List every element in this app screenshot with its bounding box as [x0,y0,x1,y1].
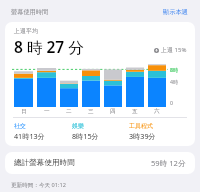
staticText: 0 [170,99,173,106]
button[interactable]: 工具程式 [129,122,186,141]
staticText: 8 時 27 分 [14,36,84,57]
button[interactable]: 社交 [14,122,72,141]
staticText: 59時 12分 [151,158,186,168]
button[interactable]: 總計螢幕使用時間 [5,152,195,174]
staticText: 五 [132,108,138,115]
staticText: 螢幕使用時間 [11,8,49,16]
staticText: 更新時間：今天 01:12 [11,181,66,189]
staticText: 總計螢幕使用時間 [14,158,75,168]
staticText: 41時13分 [14,131,45,141]
staticText: 8時 [170,66,179,73]
staticText: 工具程式 [129,122,153,130]
staticText: 二 [66,108,72,115]
staticText: 8時15分 [72,131,99,141]
button[interactable] [104,60,122,107]
button[interactable] [148,60,166,107]
staticText: 3時39分 [129,131,156,141]
button[interactable] [126,60,144,107]
button[interactable] [14,60,33,107]
button[interactable] [37,60,56,107]
staticText: 娛樂 [72,122,84,130]
staticText: 一 [44,108,50,115]
staticText: 上週平均 [14,27,38,35]
staticText: 4時 [170,78,179,85]
staticText: 上週 15% [161,46,187,54]
button[interactable]: 顯示本週 [161,7,190,17]
staticText: 三 [88,108,94,115]
staticText: 社交 [14,122,26,130]
button[interactable]: 娛樂 [72,122,129,141]
staticText: 六 [154,108,160,115]
button[interactable]: 上週平均 [5,22,195,146]
staticText: 四 [110,108,116,115]
other: 上升 [154,48,159,53]
staticText: 顯示本週 [163,8,188,16]
button[interactable] [82,60,100,107]
button[interactable] [60,60,78,107]
staticText: 日 [21,108,27,115]
